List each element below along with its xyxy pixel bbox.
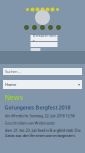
staticText: Vom 21. bis 23. Juli fand in Burgfeld st… [4, 128, 80, 138]
staticText: Geschrieben von Webmaster [4, 120, 55, 125]
button[interactable]: Gelungenes Bergfest 2018 [4, 104, 70, 111]
button[interactable]: Anmelden [30, 48, 40, 51]
staticText: Home [5, 82, 16, 87]
staticText: News [4, 93, 22, 102]
button[interactable]: Home [0, 75, 85, 89]
staticText: ▾ [78, 82, 80, 87]
staticText: Gelungenes Bergfest 2018 [4, 104, 70, 111]
staticText: Veröffentlicht: Sonntag, 22. Juli 2018 1… [4, 113, 74, 118]
staticText: Benutzername [32, 33, 57, 43]
staticText: Suchen ... [5, 69, 21, 74]
